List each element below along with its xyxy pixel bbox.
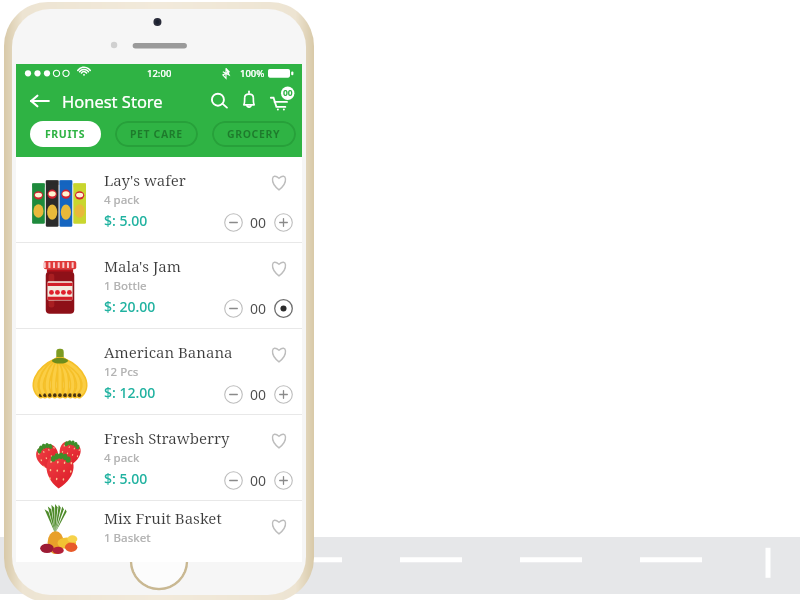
button[interactable]: Decrease [224,471,243,490]
button[interactable]: Increase [274,299,293,318]
button[interactable]: PET CARE [115,121,198,147]
button[interactable]: Back [24,85,56,117]
button[interactable]: Increase [274,385,293,404]
staticText: 00 [283,87,293,99]
staticText: 12 Pcs [104,364,139,380]
button[interactable]: Favourite Mix Fruit Basket [266,513,292,539]
staticText: $: 5.00 [104,469,148,488]
button[interactable]: Mala's Jam [16,243,302,328]
staticText: $: 20.00 [104,297,156,316]
staticText: Honest Store [62,90,163,112]
staticText: Fresh Strawberry [104,428,230,448]
button[interactable]: Increase [274,471,293,490]
button[interactable]: Favourite Mala's Jam [266,255,292,281]
button[interactable]: Decrease [224,385,243,404]
staticText: 1 Basket [104,530,151,546]
button[interactable]: Fresh Strawberry [16,415,302,500]
button[interactable]: Lay's wafer [16,157,302,242]
staticText: 4 pack [104,192,140,208]
button[interactable]: Favourite American Banana [266,341,292,367]
button[interactable]: GROCERY [212,121,296,147]
staticText: $: 5.00 [104,211,148,230]
staticText: Mix Fruit Basket [104,508,222,528]
staticText: 00 [250,385,267,404]
button[interactable]: Decrease [224,213,243,232]
staticText: Lay's wafer [104,170,186,190]
button[interactable]: American Banana [16,329,302,414]
staticText: 00 [250,213,267,232]
staticText: 1 Bottle [104,278,147,294]
button[interactable]: Favourite Lay's wafer [266,169,292,195]
button[interactable]: Decrease [224,299,243,318]
staticText: 12:00 [147,67,172,80]
staticText: American Banana [104,342,233,362]
staticText: 100% [240,67,265,80]
button[interactable]: FRUITS [30,121,101,147]
button[interactable]: Increase [274,213,293,232]
button[interactable]: Mix Fruit Basket [16,501,302,553]
staticText: 00 [250,299,267,318]
button[interactable]: Search [204,86,234,116]
button[interactable]: Favourite Fresh Strawberry [266,427,292,453]
staticText: FRUITS [45,127,86,141]
staticText: GROCERY [227,127,281,141]
button[interactable]: Cart, 00 items [264,85,296,117]
staticText: PET CARE [130,127,183,141]
button[interactable]: Notifications [234,86,264,116]
staticText: $: 12.00 [104,383,156,402]
staticText: Mala's Jam [104,256,181,276]
staticText: 4 pack [104,450,140,466]
staticText: 00 [250,471,267,490]
